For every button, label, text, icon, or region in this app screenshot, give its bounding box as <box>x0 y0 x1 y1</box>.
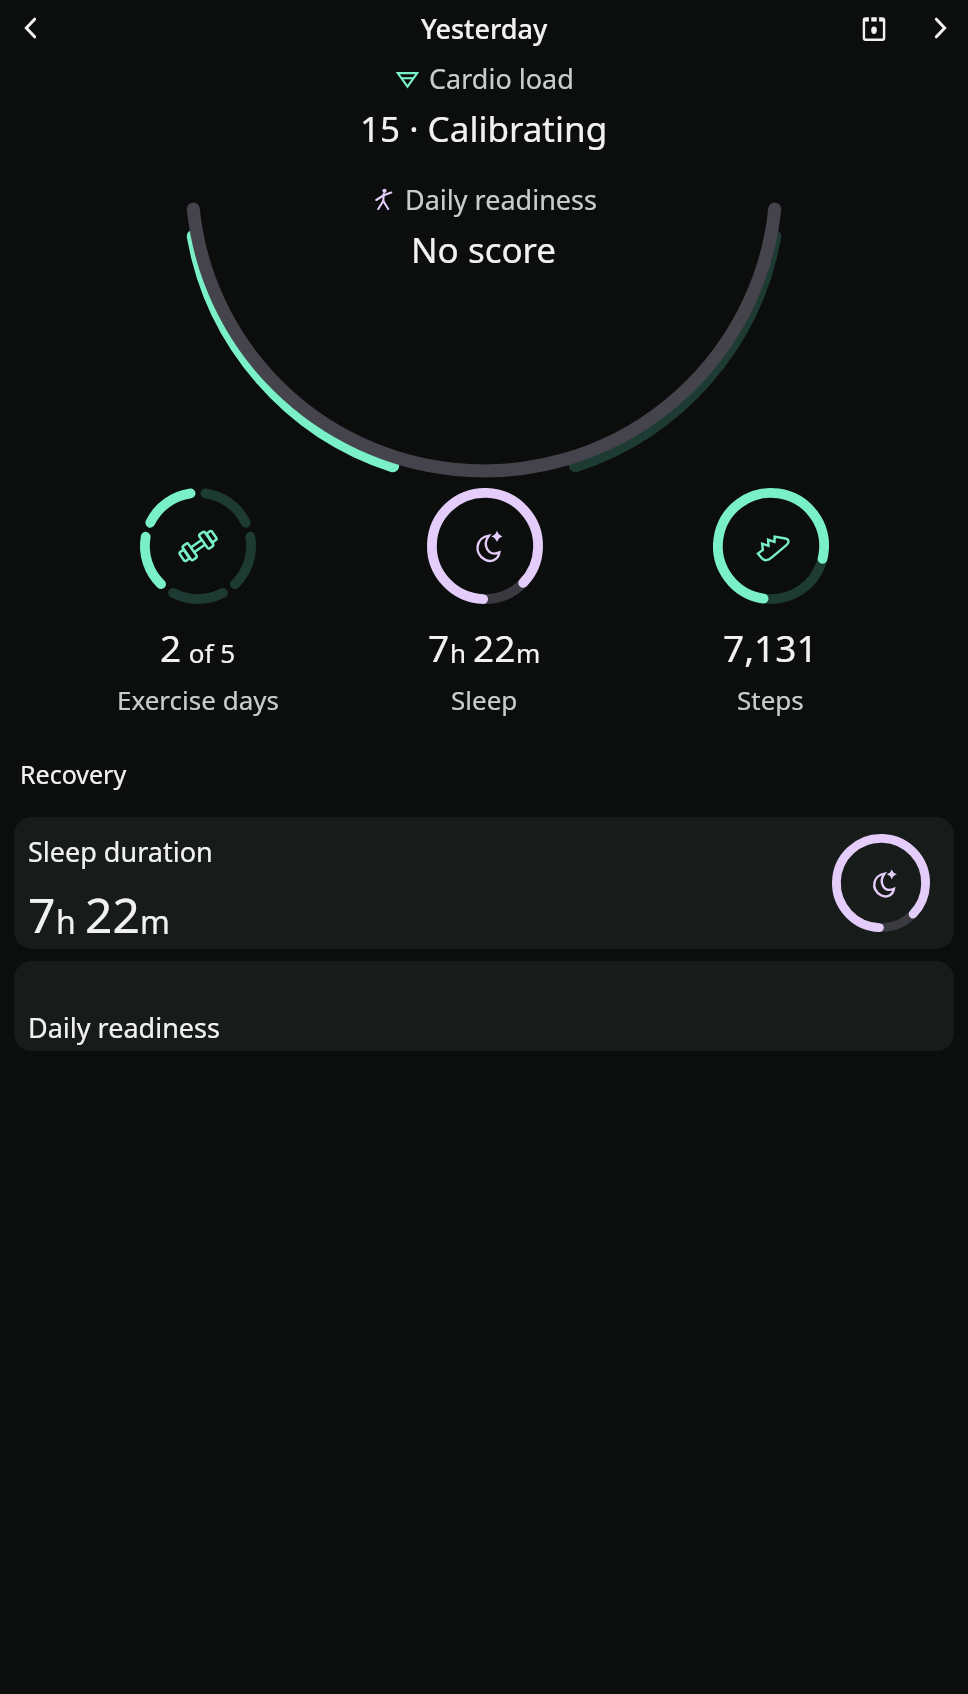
staticText: Yesterday <box>421 10 548 47</box>
staticText: Steps <box>737 682 804 717</box>
button[interactable]: Calendar <box>848 2 900 54</box>
staticText: 7 <box>428 622 450 672</box>
staticText: Daily readiness <box>28 1009 220 1046</box>
staticText: of 5 <box>182 635 236 670</box>
staticText: Sleep <box>451 682 518 717</box>
staticText: 2 <box>160 622 182 672</box>
staticText: 7,131 <box>723 622 818 672</box>
button[interactable]: Previous day <box>6 3 56 53</box>
staticText: 15 · Calibrating <box>360 105 608 153</box>
button[interactable]: 7,131 <box>673 486 868 717</box>
staticText: 22 <box>85 882 140 947</box>
staticText: h <box>450 635 473 670</box>
staticText: 22 <box>473 622 516 672</box>
staticText: Sleep duration <box>28 833 213 870</box>
button[interactable]: 2 <box>100 486 295 717</box>
staticText: 7 <box>28 882 56 947</box>
button[interactable]: Daily readiness <box>14 961 954 1051</box>
staticText: m <box>140 900 170 944</box>
button[interactable]: Next day <box>916 4 964 52</box>
staticText: Daily readiness <box>405 181 597 218</box>
staticText: Recovery <box>20 757 127 791</box>
button[interactable]: Sleep duration <box>14 817 954 949</box>
staticText: No score <box>411 226 557 274</box>
staticText: h <box>56 900 85 944</box>
button[interactable]: 7 <box>387 486 582 717</box>
staticText: Cardio load <box>429 60 574 97</box>
staticText: m <box>516 635 541 670</box>
button[interactable]: Cardio load <box>0 56 968 486</box>
staticText: Exercise days <box>117 682 279 717</box>
